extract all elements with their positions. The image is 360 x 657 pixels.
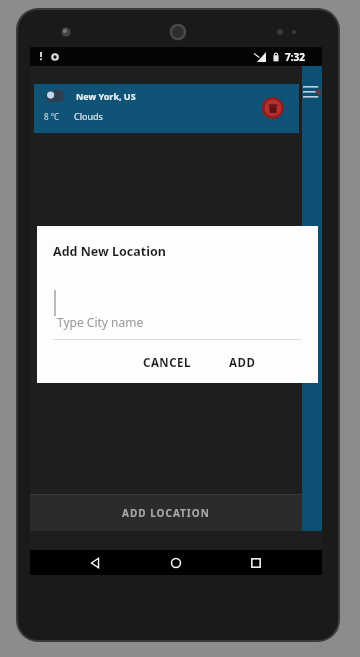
button[interactable]: Home	[168, 555, 184, 571]
staticText: 8 °C	[44, 111, 60, 122]
button[interactable]: Back	[87, 555, 103, 571]
button[interactable]: Delete location	[262, 97, 284, 119]
button[interactable]: CANCEL	[137, 351, 197, 375]
button[interactable]: Recents	[248, 555, 264, 571]
staticText: ADD LOCATION	[122, 506, 210, 520]
button[interactable]: New York, US	[34, 84, 299, 133]
staticText: ADD	[229, 355, 256, 371]
staticText: 7:32	[285, 50, 305, 64]
button[interactable]: ADD	[223, 351, 262, 375]
staticText: CANCEL	[143, 355, 191, 371]
staticText: New York, US	[76, 90, 136, 102]
staticText: Clouds	[74, 110, 103, 122]
button[interactable]: ADD LOCATION	[30, 494, 302, 531]
staticText: Add New Location	[53, 243, 166, 260]
button[interactable]: Open navigation drawer	[302, 66, 322, 531]
staticText: Type City name	[57, 314, 144, 330]
